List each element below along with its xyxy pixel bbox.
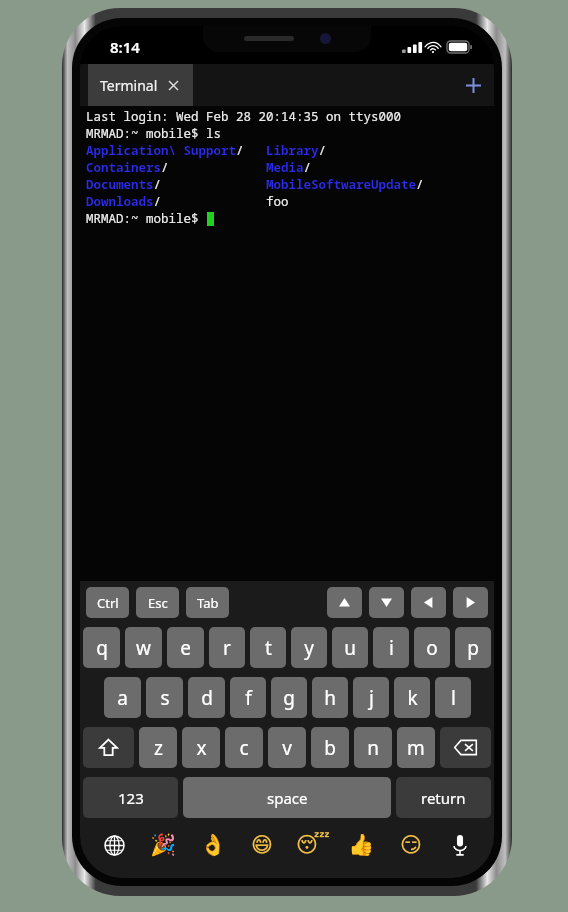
staticText: b	[324, 735, 336, 761]
button[interactable]: Close tab	[165, 77, 181, 93]
button[interactable]: Down	[369, 587, 404, 618]
button[interactable]: Tab	[186, 587, 229, 618]
staticText: Containers/ Media/	[86, 159, 312, 176]
staticText: a	[117, 685, 128, 711]
staticText: Downloads/ foo	[86, 193, 289, 210]
button[interactable]: w	[125, 627, 162, 668]
button[interactable]: n	[354, 727, 392, 768]
button[interactable]: 123	[83, 777, 178, 818]
button[interactable]: Up	[327, 587, 362, 618]
button[interactable]: Esc	[136, 587, 179, 618]
button[interactable]: return	[396, 777, 491, 818]
staticText: o	[426, 635, 438, 661]
staticText: x	[196, 735, 207, 761]
button[interactable]: 😏	[395, 829, 427, 861]
button[interactable]: c	[225, 727, 263, 768]
staticText: MRMAD:~ mobile$ ls	[86, 125, 222, 142]
button[interactable]: Left	[411, 587, 446, 618]
button[interactable]: u	[332, 627, 368, 668]
button[interactable]: 😄	[246, 829, 278, 861]
staticText: u	[344, 635, 356, 661]
staticText: Esc	[148, 594, 168, 612]
button[interactable]: 🎉	[147, 829, 179, 861]
button[interactable]: g	[271, 677, 307, 718]
button[interactable]: Shift	[83, 727, 134, 768]
button[interactable]: Terminal	[88, 64, 193, 106]
staticText: Ctrl	[97, 594, 119, 612]
staticText: v	[282, 735, 292, 761]
button[interactable]: d	[188, 677, 225, 718]
button[interactable]: 👍	[345, 829, 377, 861]
button[interactable]: v	[268, 727, 306, 768]
button[interactable]: a	[104, 677, 141, 718]
staticText: i	[389, 635, 394, 661]
staticText: w	[136, 635, 151, 661]
button[interactable]: 😴	[296, 829, 328, 861]
staticText: h	[324, 685, 336, 711]
button[interactable]: r	[209, 627, 245, 668]
staticText: s	[160, 685, 170, 711]
staticText: 🎉	[150, 833, 177, 858]
staticText: z	[154, 735, 163, 761]
button[interactable]: q	[83, 627, 120, 668]
button[interactable]: x	[182, 727, 220, 768]
staticText: Last login: Wed Feb 28 20:14:35 on ttys0…	[86, 108, 402, 125]
staticText: 😴	[296, 833, 328, 857]
button[interactable]: b	[311, 727, 349, 768]
staticText: 😏	[400, 833, 422, 857]
staticText: n	[367, 735, 379, 761]
staticText: 😄	[251, 833, 273, 857]
staticText: t	[265, 635, 272, 661]
staticText: 8:14	[110, 37, 140, 57]
staticText: Application\ Support/ Library/	[86, 142, 327, 159]
staticText: Documents/ MobileSoftwareUpdate/	[86, 176, 424, 193]
button[interactable]: z	[139, 727, 177, 768]
button[interactable]: k	[394, 677, 430, 718]
button[interactable]: Switch keyboard	[98, 829, 130, 861]
button[interactable]: Backspace	[440, 727, 491, 768]
staticText: MRMAD:~ mobile$	[86, 210, 207, 227]
staticText: 👍	[348, 833, 375, 858]
staticText: space	[267, 788, 308, 808]
button[interactable]: h	[312, 677, 348, 718]
staticText: y	[304, 635, 314, 661]
button[interactable]: e	[167, 627, 204, 668]
staticText: r	[223, 635, 231, 661]
button[interactable]: p	[455, 627, 491, 668]
staticText: m	[407, 735, 425, 761]
staticText: f	[245, 685, 252, 711]
button[interactable]: Dictation	[444, 829, 476, 861]
staticText: q	[96, 635, 108, 661]
button[interactable]: space	[183, 777, 391, 818]
button[interactable]: Ctrl	[86, 587, 129, 618]
button[interactable]: 👌	[197, 829, 229, 861]
button[interactable]: l	[435, 677, 471, 718]
button[interactable]: New tab	[452, 64, 494, 106]
button[interactable]: s	[146, 677, 183, 718]
button[interactable]: t	[250, 627, 286, 668]
staticText: c	[239, 735, 249, 761]
button[interactable]: y	[291, 627, 327, 668]
staticText: return	[421, 788, 466, 808]
staticText: Tab	[197, 594, 219, 612]
button[interactable]: j	[353, 677, 389, 718]
staticText: 👌	[200, 833, 227, 858]
staticText: l	[451, 685, 456, 711]
button[interactable]: m	[397, 727, 435, 768]
button[interactable]: o	[414, 627, 450, 668]
staticText: Terminal	[100, 76, 158, 95]
staticText: 123	[118, 788, 144, 808]
button[interactable]: Right	[453, 587, 488, 618]
staticText: e	[180, 635, 191, 661]
staticText: d	[201, 685, 213, 711]
button[interactable]: f	[230, 677, 266, 718]
staticText: k	[407, 685, 418, 711]
staticText: j	[369, 685, 374, 711]
button[interactable]: i	[373, 627, 409, 668]
staticText: p	[467, 635, 479, 661]
staticText: g	[283, 685, 295, 711]
